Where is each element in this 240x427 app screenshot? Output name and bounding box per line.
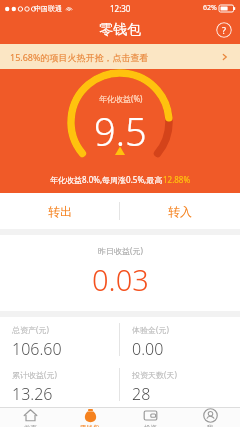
staticText: 9.5 <box>94 105 147 157</box>
staticText: 我 <box>207 424 214 427</box>
button[interactable]: 我 <box>180 408 240 427</box>
staticText: 首页 <box>24 424 37 427</box>
staticText: 中国联通 <box>34 4 62 13</box>
button[interactable]: 体验金(元) <box>120 317 240 362</box>
staticText: ? <box>222 24 226 36</box>
button[interactable]: 转出 <box>0 193 119 229</box>
staticText: 15.68%的项目火热开抢，点击查看 <box>10 51 149 63</box>
staticText: 零钱包 <box>99 21 141 39</box>
staticText: 体验金(元) <box>132 324 169 335</box>
staticText: 0.03 <box>92 260 149 299</box>
staticText: 转入 <box>168 204 192 219</box>
staticText: 13.26 <box>12 383 53 405</box>
staticText: 106.60 <box>12 338 62 360</box>
button[interactable]: 投资 <box>120 408 180 427</box>
button[interactable]: 零钱包 <box>60 408 120 427</box>
staticText: 零钱包 <box>80 424 100 427</box>
staticText: 28 <box>132 383 151 405</box>
staticText: 累计收益(元) <box>12 369 57 380</box>
staticText: 12.88% <box>163 174 191 185</box>
button[interactable]: Help <box>216 22 232 38</box>
staticText: 年化收益8.0%,每周涨0.5%,最高 <box>50 174 163 185</box>
staticText: 总资产(元) <box>12 324 49 335</box>
button[interactable]: 投资天数(天) <box>120 362 240 407</box>
staticText: 62% <box>203 3 217 13</box>
staticText: 年化收益(%) <box>99 93 143 104</box>
staticText: 昨日收益(元) <box>98 245 143 256</box>
staticText: 0.00 <box>132 338 164 360</box>
button[interactable]: 首页 <box>0 408 60 427</box>
button[interactable]: 15.68%的项目火热开抢，点击查看 <box>0 44 240 69</box>
button[interactable]: 累计收益(元) <box>0 362 119 407</box>
staticText: 投资 <box>144 424 157 427</box>
staticText: 转出 <box>48 204 72 219</box>
staticText: 12:30 <box>110 3 131 14</box>
staticText: 投资天数(天) <box>132 369 177 380</box>
button[interactable]: 总资产(元) <box>0 317 119 362</box>
button[interactable]: 转入 <box>120 193 240 229</box>
